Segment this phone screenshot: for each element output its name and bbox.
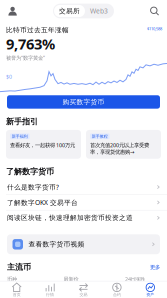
staticText: 最新价 — [63, 276, 78, 282]
staticText: 查看数字货币视频 — [28, 240, 84, 248]
staticText: 主流币 — [7, 262, 31, 272]
button[interactable]: 新手福利 — [6, 130, 81, 159]
staticText: 交易所 — [59, 7, 80, 15]
button[interactable]: 了解数字OKX 交易平台 — [0, 195, 167, 210]
staticText: 被誉为“数字黄金” — [6, 54, 45, 61]
button[interactable]: 阅读区块链，快速理解加密货币投资之道 — [0, 210, 167, 225]
staticText: 合约 — [113, 292, 121, 297]
staticText: 比特币过去五年涨幅 — [6, 26, 69, 34]
staticText: 9,763% — [6, 34, 55, 54]
button[interactable]: 合约 — [100, 281, 134, 298]
staticText: 什么是数字货币? — [7, 183, 59, 191]
button[interactable]: 交易 — [67, 281, 100, 298]
staticText: 了解数字OKX 交易平台 — [7, 198, 78, 207]
button[interactable]: Account — [6, 3, 19, 19]
staticText: $0 — [6, 73, 12, 80]
staticText: 新手福利 — [12, 134, 28, 139]
staticText: 阅读区块链，快速理解加密货币投资之道 — [7, 214, 133, 222]
staticText: 新手教程 — [92, 134, 108, 139]
staticText: Web3 — [90, 7, 108, 15]
button[interactable]: 资产 — [134, 281, 167, 298]
staticText: 首次充值200元以上享受费率，享现货优惠购→ — [90, 142, 149, 155]
button[interactable]: 首页 — [0, 281, 33, 298]
staticText: 资产 — [146, 292, 154, 297]
staticText: 了解数字货币 — [6, 167, 54, 176]
staticText: $110,588 — [147, 26, 162, 31]
staticText: 行情 — [46, 292, 54, 297]
staticText: 首页 — [13, 292, 21, 297]
button[interactable]: 更多 — [150, 264, 160, 270]
button[interactable]: 新手教程 — [86, 130, 161, 159]
staticText: 查看好友，一起获得 100万元 — [10, 142, 75, 149]
button[interactable]: Web3 — [85, 5, 113, 17]
staticText: 新手指引 — [6, 117, 38, 126]
button[interactable]: Search — [148, 3, 161, 19]
staticText: 更多 — [150, 264, 160, 270]
button[interactable]: 查看数字货币视频 — [7, 234, 160, 254]
button[interactable]: 购买数字货币 — [7, 95, 160, 109]
button[interactable]: 交易所 — [54, 5, 85, 17]
staticText: 24H涨跌 — [125, 276, 145, 283]
button[interactable]: 什么是数字货币? — [0, 179, 167, 195]
staticText: 购买数字货币 — [62, 98, 104, 106]
staticText: 交易 — [79, 292, 87, 297]
button[interactable]: 行情 — [33, 281, 67, 298]
staticText: 币种 — [7, 276, 17, 282]
